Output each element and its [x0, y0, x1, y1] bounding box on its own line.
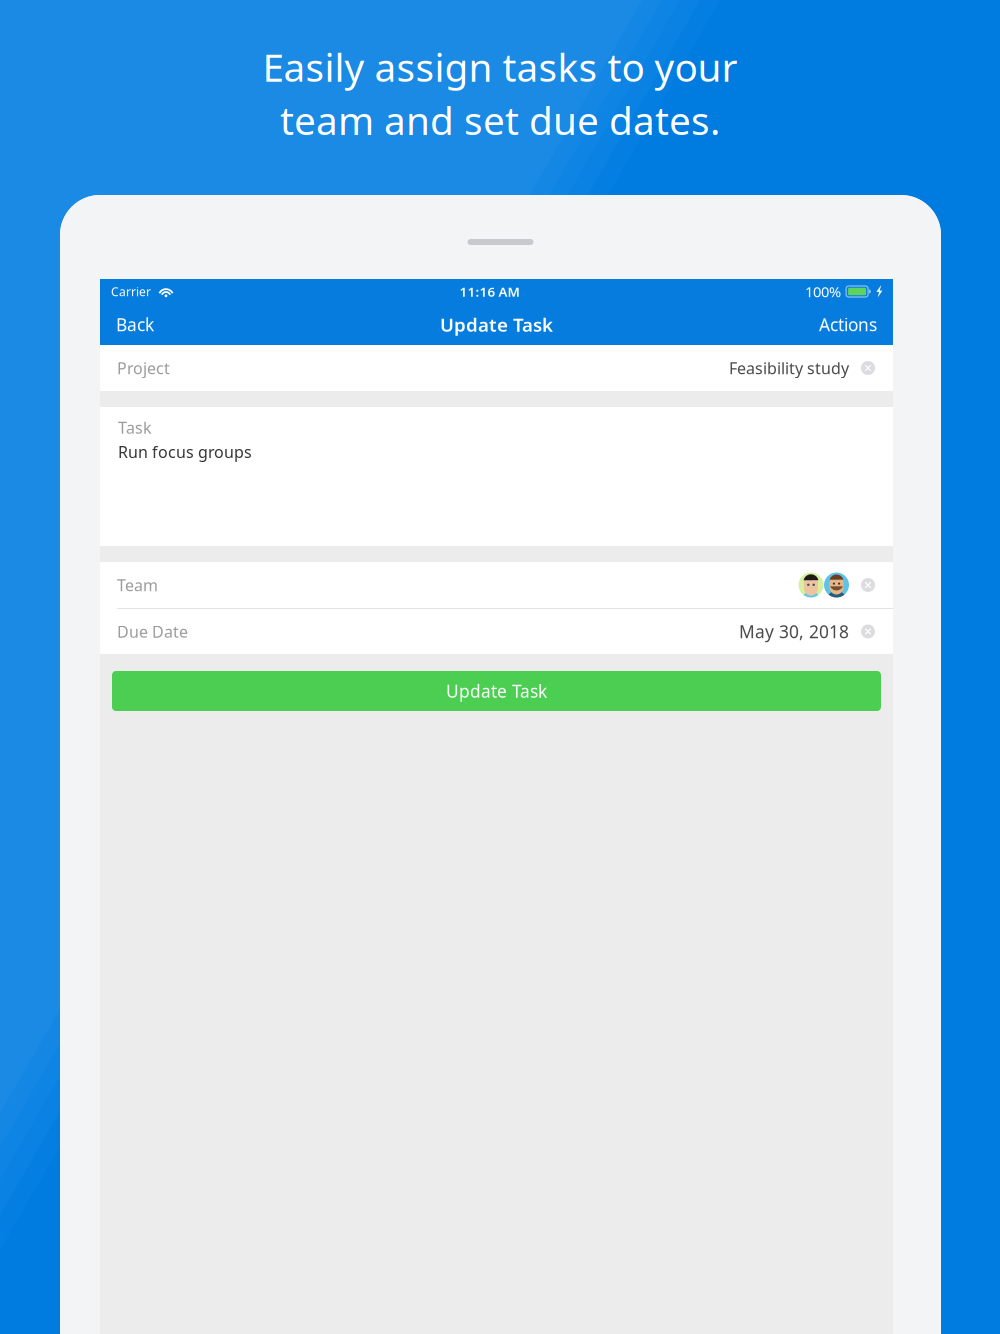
- button[interactable]: Back: [100, 304, 170, 345]
- staticText: Carrier: [111, 283, 151, 299]
- staticText: 100%: [805, 282, 841, 301]
- button[interactable]: Due Date: [100, 609, 893, 654]
- staticText: Due Date: [117, 621, 188, 642]
- staticText: May 30, 2018: [739, 620, 849, 643]
- button[interactable]: Team: [100, 562, 893, 608]
- staticText: Feasibility study: [729, 357, 849, 379]
- staticText: Easily assign tasks to your: [262, 41, 737, 92]
- button[interactable]: Clear Project: [861, 361, 875, 375]
- button[interactable]: Project: [100, 345, 893, 391]
- staticText: Project: [117, 357, 170, 379]
- staticText: Update Task: [446, 679, 547, 702]
- button[interactable]: Clear Due Date: [861, 624, 875, 638]
- button[interactable]: Clear Team: [861, 578, 875, 592]
- staticText: Task: [118, 417, 152, 438]
- staticText: Run focus groups: [118, 441, 252, 462]
- staticText: 11:16 AM: [460, 283, 520, 300]
- staticText: Back: [116, 313, 154, 336]
- staticText: Team: [117, 574, 158, 596]
- button[interactable]: Actions: [803, 304, 893, 345]
- staticText: Actions: [819, 313, 877, 336]
- button[interactable]: Update Task: [112, 671, 881, 711]
- staticText: team and set due dates.: [280, 94, 720, 146]
- staticText: Update Task: [440, 312, 553, 337]
